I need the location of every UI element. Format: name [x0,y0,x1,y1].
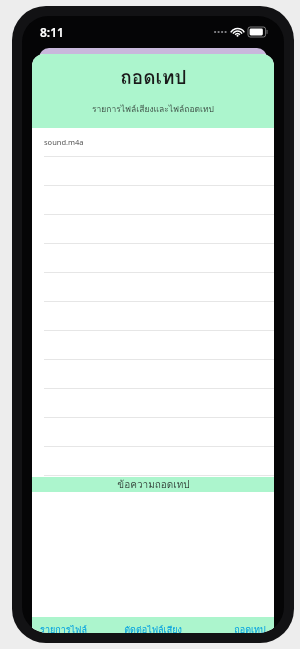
button[interactable]: ถอดเทป [193,617,274,633]
button[interactable] [32,157,274,186]
staticText: รายการไฟล์เสียงและไฟล์ถอดเทป [92,102,214,116]
staticText: ข้อความถอดเทป [117,477,190,492]
staticText: ถอดเทป [120,62,187,92]
staticText: sound.m4a [44,137,84,147]
staticText: ตัดต่อไฟล์เสียง [124,623,182,633]
button[interactable] [32,447,274,476]
button[interactable]: sound.m4a [32,128,274,157]
button[interactable] [32,273,274,302]
button[interactable] [32,186,274,215]
button[interactable]: ตัดต่อไฟล์เสียง [112,617,193,633]
button[interactable] [32,418,274,447]
button[interactable] [32,244,274,273]
button[interactable] [32,302,274,331]
staticText: รายการไฟล์ [40,623,87,633]
button[interactable] [32,215,274,244]
button[interactable]: รายการไฟล์ [32,617,112,633]
button[interactable] [32,360,274,389]
button[interactable] [32,331,274,360]
staticText: ถอดเทป [234,623,266,633]
button[interactable] [32,389,274,418]
staticText: 8:11 [40,24,64,40]
